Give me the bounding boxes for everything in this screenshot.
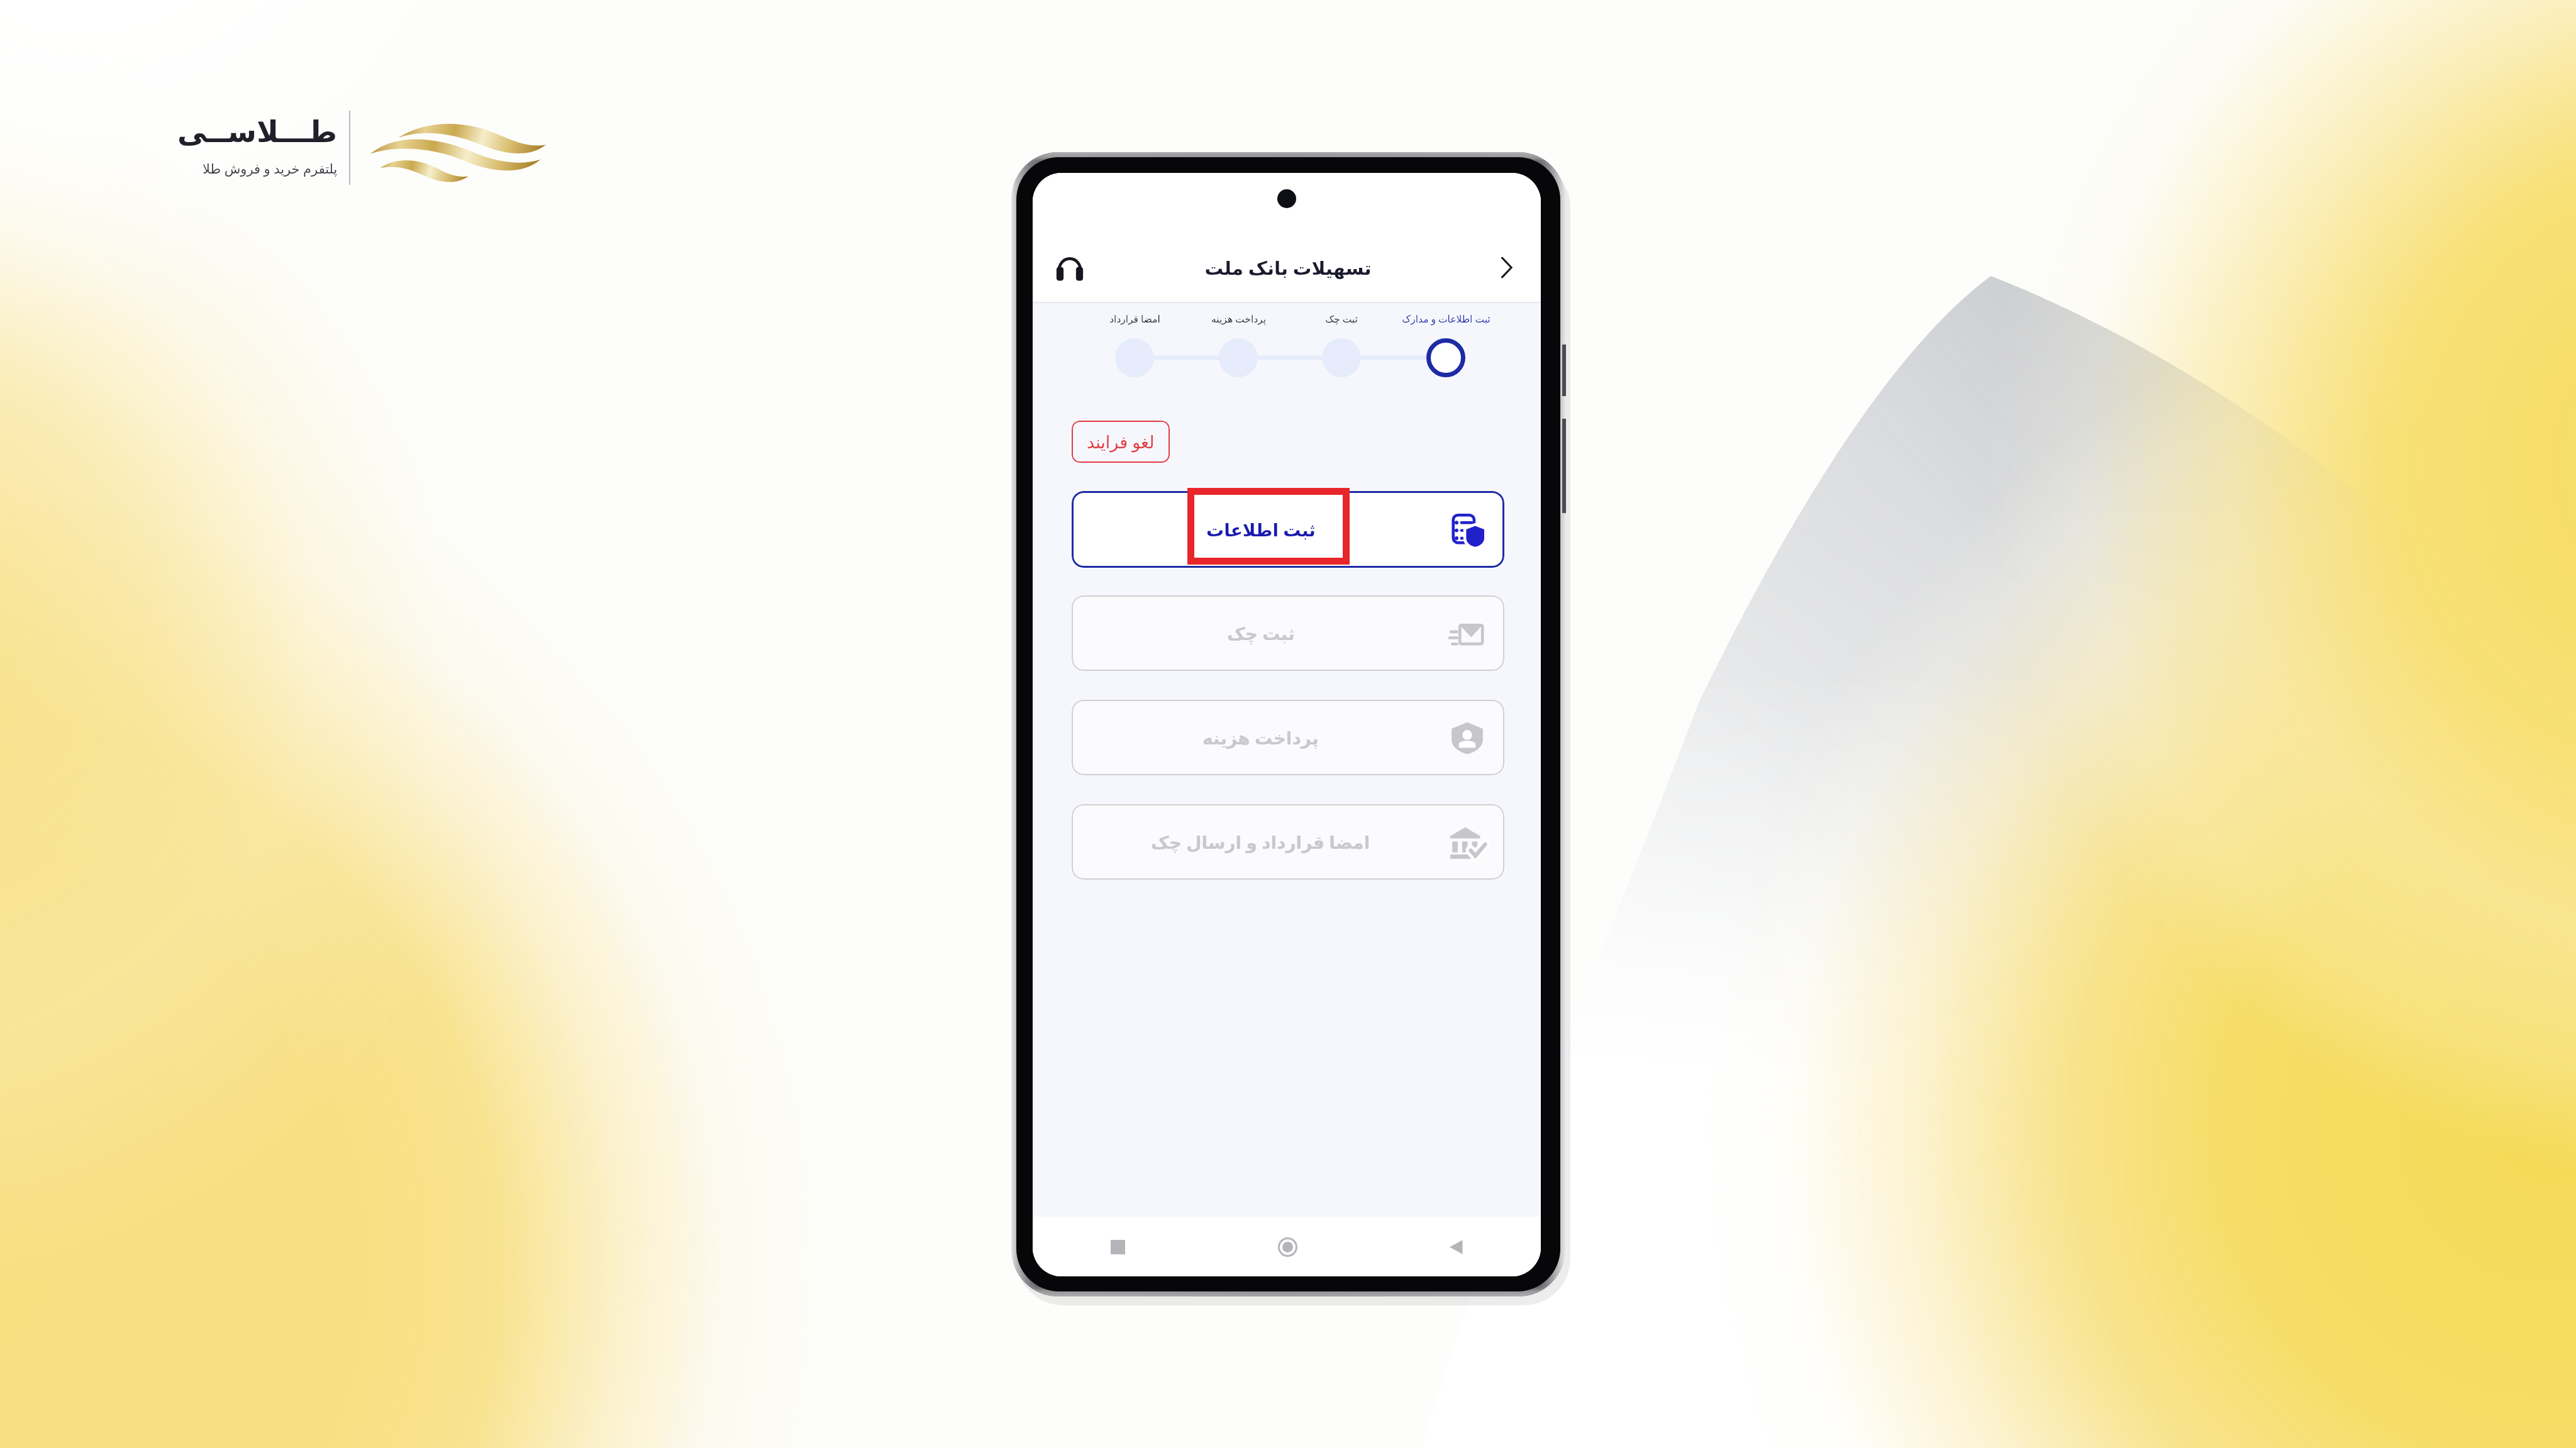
button[interactable]: ثبت اطلاعات (1072, 491, 1504, 568)
button[interactable]: Back (1437, 1227, 1476, 1266)
button[interactable]: طـــلاســی (113, 109, 338, 154)
button[interactable]: ثبت چک (1072, 595, 1504, 671)
staticText: ثبت چک (1325, 312, 1358, 325)
staticText: پرداخت هزینه (1202, 726, 1319, 749)
button[interactable]: امضا قرارداد (1065, 309, 1204, 328)
button[interactable]: ثبت چک (1272, 309, 1411, 328)
staticText: ثبت اطلاعات (1206, 517, 1316, 541)
staticText: پلتفرم خرید و فروش طلا (203, 160, 338, 178)
staticText: لغو فرایند (1087, 430, 1155, 453)
button[interactable]: Back (1488, 249, 1524, 285)
button[interactable]: امضا قرارداد و ارسال چک (1072, 804, 1504, 880)
staticText: امضا قرارداد و ارسال چک (1151, 830, 1370, 854)
staticText: تسهیلات بانک ملت (1088, 255, 1488, 280)
staticText: پرداخت هزینه (1211, 312, 1266, 325)
button[interactable]: ثبت اطلاعات و مدارک (1377, 309, 1515, 328)
button[interactable]: Support (1052, 249, 1088, 285)
staticText: ثبت چک (1227, 621, 1295, 645)
staticText: امضا قرارداد (1109, 312, 1160, 325)
button[interactable]: پرداخت هزینه (1169, 309, 1307, 328)
staticText: ثبت اطلاعات و مدارک (1402, 312, 1491, 325)
button[interactable]: پرداخت هزینه (1072, 700, 1504, 775)
staticText: طـــلاســی (177, 114, 338, 149)
button[interactable]: Home (1268, 1227, 1307, 1266)
button[interactable]: لغو فرایند (1072, 421, 1170, 463)
button[interactable]: Recent apps (1098, 1227, 1137, 1266)
other: Talasi logo (367, 114, 548, 185)
